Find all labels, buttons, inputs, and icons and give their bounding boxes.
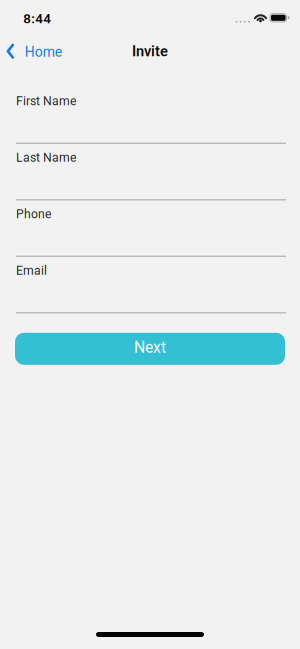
staticText: Next <box>134 338 166 356</box>
staticText: Phone <box>16 207 51 221</box>
button[interactable]: Home <box>0 44 62 60</box>
button[interactable]: First Name text field <box>16 93 286 144</box>
button[interactable]: Last Name text field <box>16 149 286 200</box>
staticText: Invite <box>132 43 168 60</box>
button[interactable]: Next <box>15 333 285 365</box>
staticText: Home <box>25 44 62 60</box>
staticText: Email <box>16 263 47 277</box>
staticText: Last Name <box>16 150 76 164</box>
staticText: First Name <box>16 94 76 108</box>
button[interactable]: Email text field <box>16 262 286 313</box>
staticText: 8:44 <box>23 11 51 26</box>
button[interactable]: Phone text field <box>16 206 286 257</box>
